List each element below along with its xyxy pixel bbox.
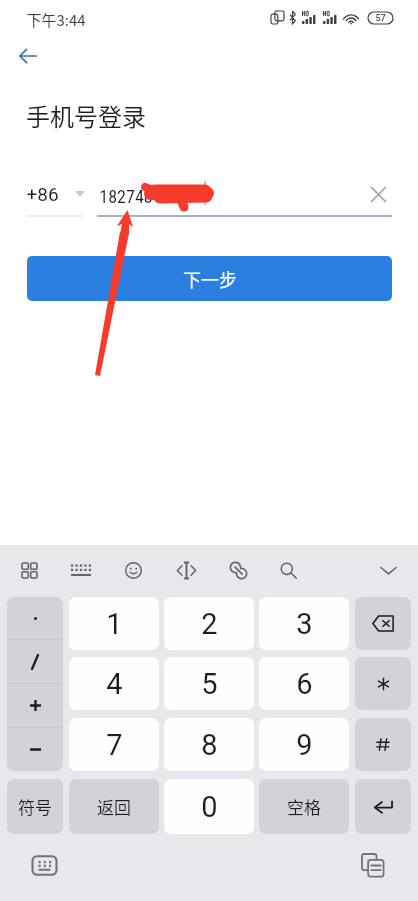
button[interactable]: Keyboard — [64, 553, 98, 587]
button[interactable]: 7 — [69, 718, 159, 771]
staticText: 下午3:44 — [26, 9, 86, 31]
button[interactable]: Collapse — [371, 553, 405, 587]
button[interactable]: 4 — [69, 657, 159, 710]
button[interactable]: Search — [271, 553, 305, 587]
button[interactable]: +86 — [26, 180, 85, 207]
button[interactable]: 8 — [164, 718, 254, 771]
button[interactable]: 1 — [69, 597, 159, 650]
button[interactable]: Back — [9, 37, 47, 75]
button[interactable] — [355, 718, 411, 771]
button[interactable]: 符号 — [7, 779, 63, 834]
staticText: 182748 — [99, 186, 153, 207]
staticText: 下一步 — [183, 266, 237, 292]
staticText: 7 — [106, 728, 123, 762]
button[interactable]: 下一步 — [27, 256, 392, 301]
button[interactable]: 9 — [259, 718, 349, 771]
button[interactable]: 3 — [259, 597, 349, 650]
staticText: 返回 — [97, 794, 131, 819]
button[interactable] — [7, 597, 63, 639]
staticText: 空格 — [287, 794, 321, 819]
staticText: +86 — [26, 183, 59, 205]
staticText: 1 — [106, 607, 123, 641]
staticText: 9 — [296, 728, 313, 762]
staticText: 8 — [201, 728, 218, 762]
button[interactable]: 6 — [259, 657, 349, 710]
staticText: 3 — [296, 607, 313, 641]
button[interactable] — [355, 597, 411, 650]
button[interactable]: Text cursor — [169, 553, 203, 587]
staticText: 5 — [201, 667, 218, 701]
staticText: 手机号登录 — [26, 98, 146, 133]
button[interactable] — [7, 640, 63, 683]
button[interactable] — [355, 779, 411, 834]
staticText: 57 — [375, 13, 386, 24]
button[interactable] — [355, 657, 411, 710]
staticText: 符号 — [18, 794, 52, 819]
button[interactable]: Insert — [221, 553, 255, 587]
button[interactable]: 空格 — [259, 779, 349, 834]
button[interactable]: 返回 — [69, 779, 159, 834]
button[interactable] — [7, 684, 63, 727]
staticText: 0 — [201, 790, 218, 824]
button[interactable] — [7, 728, 63, 771]
staticText: 2 — [201, 607, 218, 641]
button[interactable]: 5 — [164, 657, 254, 710]
staticText: 4 — [106, 667, 123, 701]
button[interactable]: Clear — [364, 180, 392, 208]
button[interactable]: Switch keyboard — [29, 850, 60, 881]
button[interactable]: Clipboard — [357, 850, 388, 881]
button[interactable]: 0 — [164, 779, 254, 834]
button[interactable]: 2 — [164, 597, 254, 650]
button[interactable]: Emoji — [116, 553, 150, 587]
staticText: 6 — [296, 667, 313, 701]
button[interactable]: Apps — [12, 553, 46, 587]
